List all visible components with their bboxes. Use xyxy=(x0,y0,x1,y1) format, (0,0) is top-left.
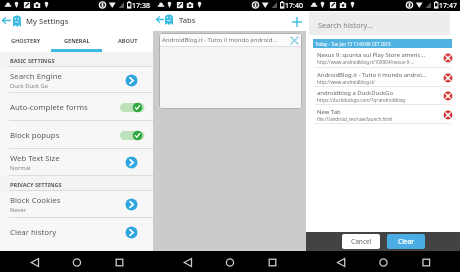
staticText: file:///android_res/raw/launch.html xyxy=(317,116,393,122)
staticText: http://www.androidblog.it/ xyxy=(317,79,375,85)
button[interactable]: GHOSTERY xyxy=(0,32,51,52)
button[interactable]: Back xyxy=(0,14,13,27)
staticText: GHOSTERY xyxy=(11,37,41,45)
staticText: Block Cookies xyxy=(10,195,61,206)
staticText: Auto-complete forms xyxy=(10,102,88,113)
button[interactable]: GENERAL xyxy=(51,32,102,52)
button[interactable]: AndroidBlog.it - Tutto il mondo android.… xyxy=(159,33,302,109)
button[interactable]: New tab xyxy=(290,15,304,29)
button[interactable]: Clear xyxy=(387,234,425,249)
button[interactable]: Delete xyxy=(442,109,454,121)
button[interactable]: Block Cookies xyxy=(0,191,153,218)
button[interactable]: Auto-complete forms xyxy=(0,93,153,121)
button[interactable]: Clear history xyxy=(0,218,153,246)
button[interactable]: AndroidBlog.it - Tutto il mondo androi..… xyxy=(306,68,460,87)
button[interactable]: androidblog a DuckDuckGo xyxy=(306,87,460,105)
staticText: PRIVACY SETTINGS xyxy=(10,181,62,189)
button[interactable]: Delete xyxy=(442,72,454,84)
button[interactable]: Cancel xyxy=(342,234,380,249)
staticText: Normal xyxy=(10,164,31,172)
staticText: http://www.androidblog.it/108904/nexus-9… xyxy=(317,59,415,65)
staticText: Clear history xyxy=(10,227,57,238)
staticText: 17:47 xyxy=(439,1,457,11)
button[interactable]: Delete xyxy=(442,52,454,64)
button[interactable]: Delete xyxy=(442,90,454,102)
staticText: AndroidBlog.it - Tutto il mondo androi..… xyxy=(317,71,427,79)
button[interactable]: Search history... xyxy=(309,12,450,35)
button[interactable]: Back xyxy=(153,13,166,26)
staticText: New Tab xyxy=(317,108,341,116)
button[interactable]: Block popups xyxy=(0,121,153,149)
staticText: Nexus 9: spunta sul Play Store americ... xyxy=(317,51,426,59)
staticText: Today - Tue Jan 13 17:43:06 CET 2015 xyxy=(315,41,391,47)
staticText: Web Text Size xyxy=(10,153,60,164)
staticText: Block popups xyxy=(10,130,60,141)
staticText: Cancel xyxy=(351,237,372,246)
staticText: Clear xyxy=(398,237,415,246)
staticText: Tabs xyxy=(179,15,196,25)
staticText: ABOUT xyxy=(118,37,138,45)
staticText: Never xyxy=(10,206,27,214)
staticText: 17:38 xyxy=(132,1,150,11)
staticText: Search Engine xyxy=(10,71,62,82)
staticText: Search history... xyxy=(318,20,373,30)
button[interactable]: Search Engine xyxy=(0,67,153,93)
staticText: AndroidBlog.it - Tutto il mondo android.… xyxy=(162,36,288,44)
button[interactable]: Close tab xyxy=(288,34,300,46)
staticText: BASIC SETTINGS xyxy=(10,57,55,65)
staticText: GENERAL xyxy=(64,37,90,45)
staticText: Duck Duck Go xyxy=(10,82,49,90)
button[interactable]: New Tab xyxy=(306,105,460,124)
staticText: androidblog a DuckDuckGo xyxy=(317,89,393,97)
staticText: 17:40 xyxy=(285,1,303,11)
button[interactable]: Web Text Size xyxy=(0,149,153,176)
button[interactable]: ABOUT xyxy=(102,32,153,52)
staticText: https://duckduckgo.com/?q=androidblog xyxy=(317,97,406,103)
button[interactable]: Nexus 9: spunta sul Play Store americ... xyxy=(306,48,460,68)
staticText: My Settings xyxy=(26,16,69,26)
